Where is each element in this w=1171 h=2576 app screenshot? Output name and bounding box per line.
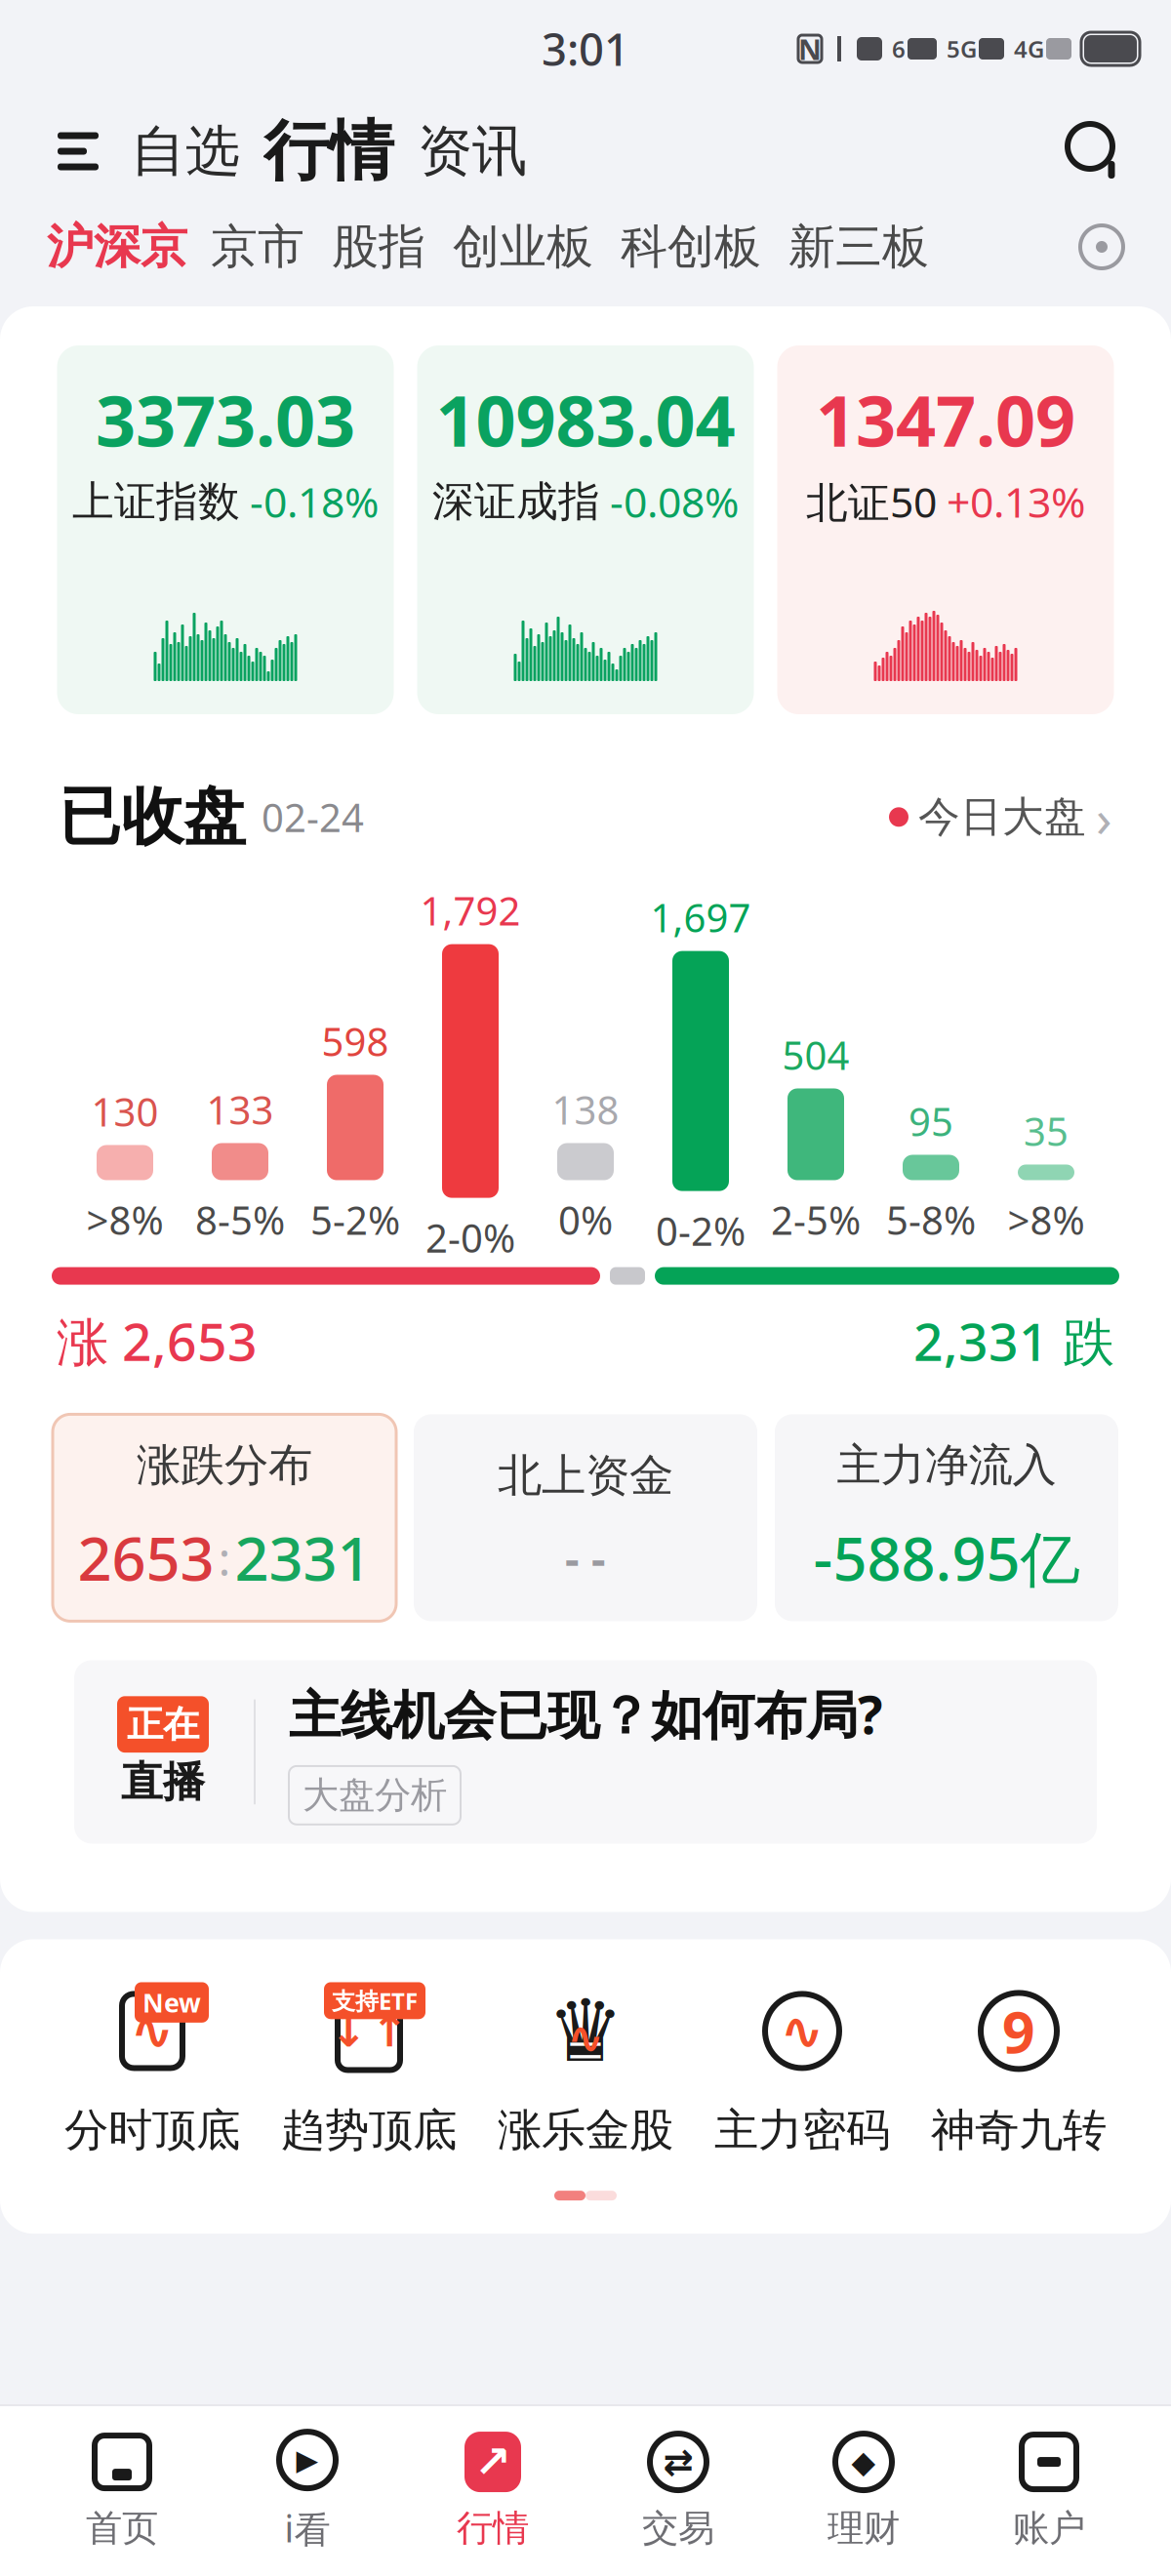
staticText: 2-5% [771, 1194, 861, 1246]
button[interactable]: 股指 [318, 218, 439, 276]
staticText: 2653 [78, 1518, 214, 1597]
button[interactable]: 涨跌分布 [53, 1414, 396, 1621]
staticText: 1,697 [650, 891, 751, 943]
staticText: i看 [284, 2504, 330, 2552]
staticText: 3373.03 [96, 373, 355, 466]
button[interactable]: 正在 [74, 1660, 1097, 1844]
staticText: 1347.09 [816, 373, 1075, 466]
staticText: -0.18% [250, 474, 379, 529]
staticText: 10983.04 [436, 373, 735, 466]
button[interactable]: ↓ [261, 1982, 477, 2157]
staticText: 资讯 [418, 118, 527, 185]
button[interactable]: 9 [910, 1982, 1127, 2157]
staticText: 5-2% [310, 1194, 400, 1246]
button[interactable]: ∿ [694, 1982, 910, 2157]
staticText: 35 [1024, 1105, 1069, 1157]
staticText: ↓ [330, 2006, 367, 2056]
staticText: 正在 [127, 1702, 199, 1747]
staticText: 上证指数 [72, 476, 240, 527]
staticText: ⇄ [663, 2441, 693, 2483]
staticText: 已收盘 [59, 779, 246, 855]
staticText: 130 [91, 1085, 159, 1137]
staticText: 新三板 [788, 218, 929, 276]
button[interactable]: 今日大盘 [889, 782, 1112, 852]
staticText: >8% [1008, 1194, 1085, 1246]
staticText: 自选 [131, 118, 240, 185]
button[interactable]: 行情 [252, 111, 406, 191]
staticText: 4G [1014, 33, 1044, 64]
button[interactable]: 搜索 [1056, 112, 1134, 190]
staticText: 账户 [1013, 2506, 1085, 2551]
staticText: -588.95亿 [813, 1518, 1080, 1597]
button[interactable]: 创业板 [439, 218, 607, 276]
button[interactable]: 京市 [197, 218, 318, 276]
staticText: 直播 [121, 1757, 205, 1808]
staticText: 创业板 [453, 218, 593, 276]
staticText: 6 [892, 33, 906, 64]
staticText: 首页 [86, 2506, 158, 2551]
button[interactable]: ▶ [215, 2428, 400, 2555]
staticText: 京市 [211, 218, 304, 276]
staticText: ↑ [371, 2006, 408, 2056]
staticText: ∿ [780, 2001, 824, 2061]
button[interactable]: ♛ [477, 1982, 694, 2157]
button[interactable]: ◆ [771, 2428, 956, 2555]
staticText: 主线机会已现？如何布局? [289, 1679, 882, 1748]
staticText: ↗ [474, 2437, 511, 2487]
button[interactable]: 新三板 [775, 218, 943, 276]
staticText: 02-24 [262, 791, 364, 843]
button[interactable]: 账户 [956, 2428, 1142, 2555]
staticText: 138 [552, 1083, 619, 1135]
staticText: -0.08% [610, 474, 739, 529]
staticText: 北证50 [806, 474, 937, 529]
button[interactable]: ⇄ [585, 2428, 771, 2555]
button[interactable]: 10983.04 [417, 345, 754, 714]
button[interactable]: 3373.03 [57, 345, 394, 714]
staticText: ♛ [547, 1982, 624, 2080]
staticText: 2331 [235, 1518, 371, 1597]
staticText: 沪深京 [47, 218, 187, 276]
staticText: 9 [1002, 1993, 1035, 2069]
button[interactable]: ↗ [400, 2428, 585, 2555]
staticText: 支持ETF [332, 1985, 418, 2016]
staticText: 2-0% [425, 1212, 515, 1263]
button[interactable]: 首页 [29, 2428, 215, 2555]
staticText: - - [565, 1528, 606, 1587]
staticText: 趋势顶底 [281, 2103, 457, 2157]
staticText: 8-5% [195, 1194, 285, 1246]
staticText: ▶ [296, 2444, 319, 2476]
button[interactable]: 资讯 [406, 118, 539, 185]
staticText: 0% [558, 1194, 613, 1246]
staticText: 深证成指 [432, 476, 600, 527]
button[interactable]: 菜单 [37, 110, 119, 192]
staticText: 3:01 [542, 19, 629, 78]
staticText: ∿ [567, 2013, 604, 2063]
staticText: 行情 [263, 111, 394, 191]
button[interactable]: 1347.09 [777, 345, 1114, 714]
staticText: 神奇九转 [931, 2103, 1107, 2157]
staticText: 504 [782, 1029, 849, 1081]
staticText: 0-2% [656, 1205, 746, 1256]
button[interactable]: ∿ [44, 1982, 261, 2157]
button[interactable]: 北上资金 [414, 1414, 757, 1621]
button[interactable]: 科创板 [607, 218, 775, 276]
button[interactable]: 沪深京 [37, 218, 197, 276]
staticText: 科创板 [621, 218, 761, 276]
button[interactable]: 设置 [1070, 215, 1134, 279]
button[interactable]: 自选 [119, 118, 252, 185]
button[interactable]: 主力净流入 [775, 1414, 1118, 1621]
staticText: ◆ [851, 2444, 876, 2480]
staticText: › [1096, 782, 1112, 852]
staticText: 598 [322, 1015, 389, 1067]
staticText: 分时顶底 [64, 2103, 240, 2157]
staticText: 今日大盘 [918, 791, 1086, 843]
staticText: +0.13% [947, 474, 1085, 529]
staticText: 主力净流入 [837, 1438, 1056, 1493]
staticText: 1,792 [420, 885, 521, 936]
staticText: 涨 2,653 [57, 1306, 258, 1375]
staticText: 95 [909, 1095, 953, 1147]
staticText: 133 [206, 1083, 274, 1135]
staticText: : [218, 1526, 231, 1589]
staticText: 2,331 跌 [913, 1306, 1114, 1375]
staticText: 主力密码 [714, 2103, 890, 2157]
